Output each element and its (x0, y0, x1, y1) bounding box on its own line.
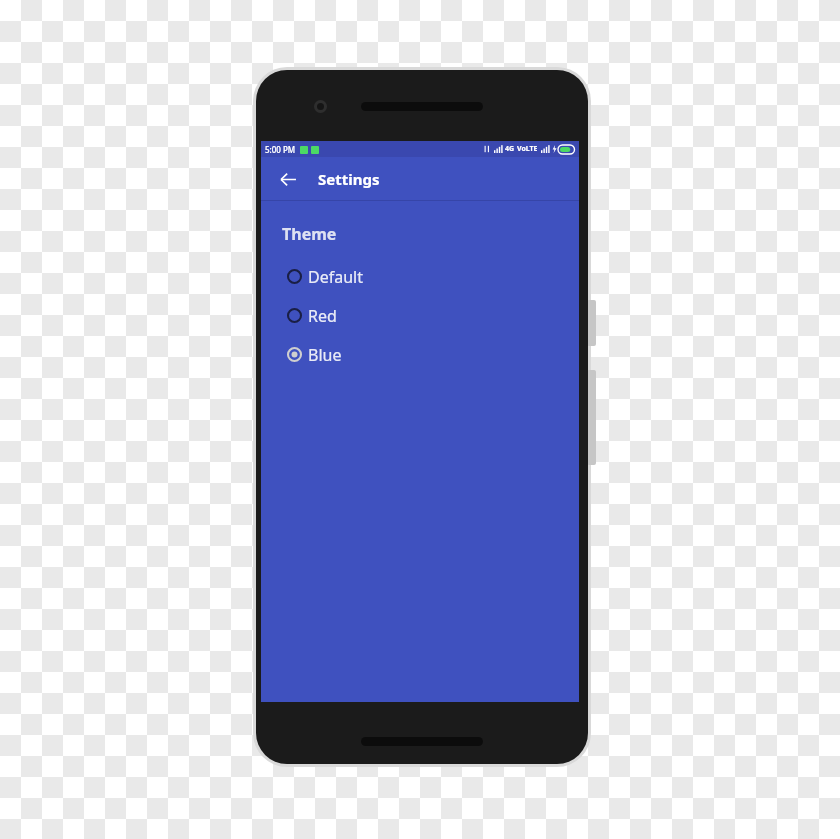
staticText: VoLTE (517, 144, 538, 154)
staticText: Blue (308, 344, 342, 366)
staticText: Red (308, 305, 337, 327)
button[interactable]: Default (261, 257, 579, 296)
button[interactable]: Back (271, 162, 305, 196)
staticText: Settings (318, 169, 380, 189)
staticText: Theme (282, 223, 337, 245)
staticText: 5:00 PM (265, 144, 296, 155)
button[interactable]: Red (261, 296, 579, 335)
button[interactable]: Blue (261, 335, 579, 374)
staticText: 4G (505, 144, 515, 154)
staticText: Default (308, 266, 363, 288)
